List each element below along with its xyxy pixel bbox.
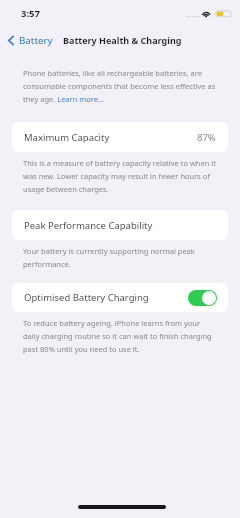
button[interactable]: Optimised Battery Charging xyxy=(12,283,228,312)
staticText: Phone batteries, like all rechargeable b… xyxy=(23,68,217,104)
staticText: Your battery is currently supporting nor… xyxy=(23,246,217,269)
button[interactable]: Back to Battery xyxy=(0,31,57,50)
staticText: This is a measure of battery capacity re… xyxy=(23,158,217,194)
button[interactable]: Peak Performance Capability xyxy=(12,210,228,240)
button[interactable]: Maximum Capacity xyxy=(12,122,228,152)
staticText: Battery Health & Charging xyxy=(63,34,182,46)
button[interactable]: Learn more about battery health xyxy=(56,92,104,103)
staticText: 3:57 xyxy=(21,7,40,20)
staticText: 87% xyxy=(197,131,216,144)
staticText: Maximum Capacity xyxy=(24,131,110,144)
button[interactable]: Optimised Battery Charging toggle xyxy=(188,290,217,306)
staticText: To reduce battery ageing, iPhone learns … xyxy=(23,318,217,354)
staticText: Peak Performance Capability xyxy=(24,219,153,232)
staticText: Battery xyxy=(19,34,53,47)
staticText: Optimised Battery Charging xyxy=(24,291,149,304)
